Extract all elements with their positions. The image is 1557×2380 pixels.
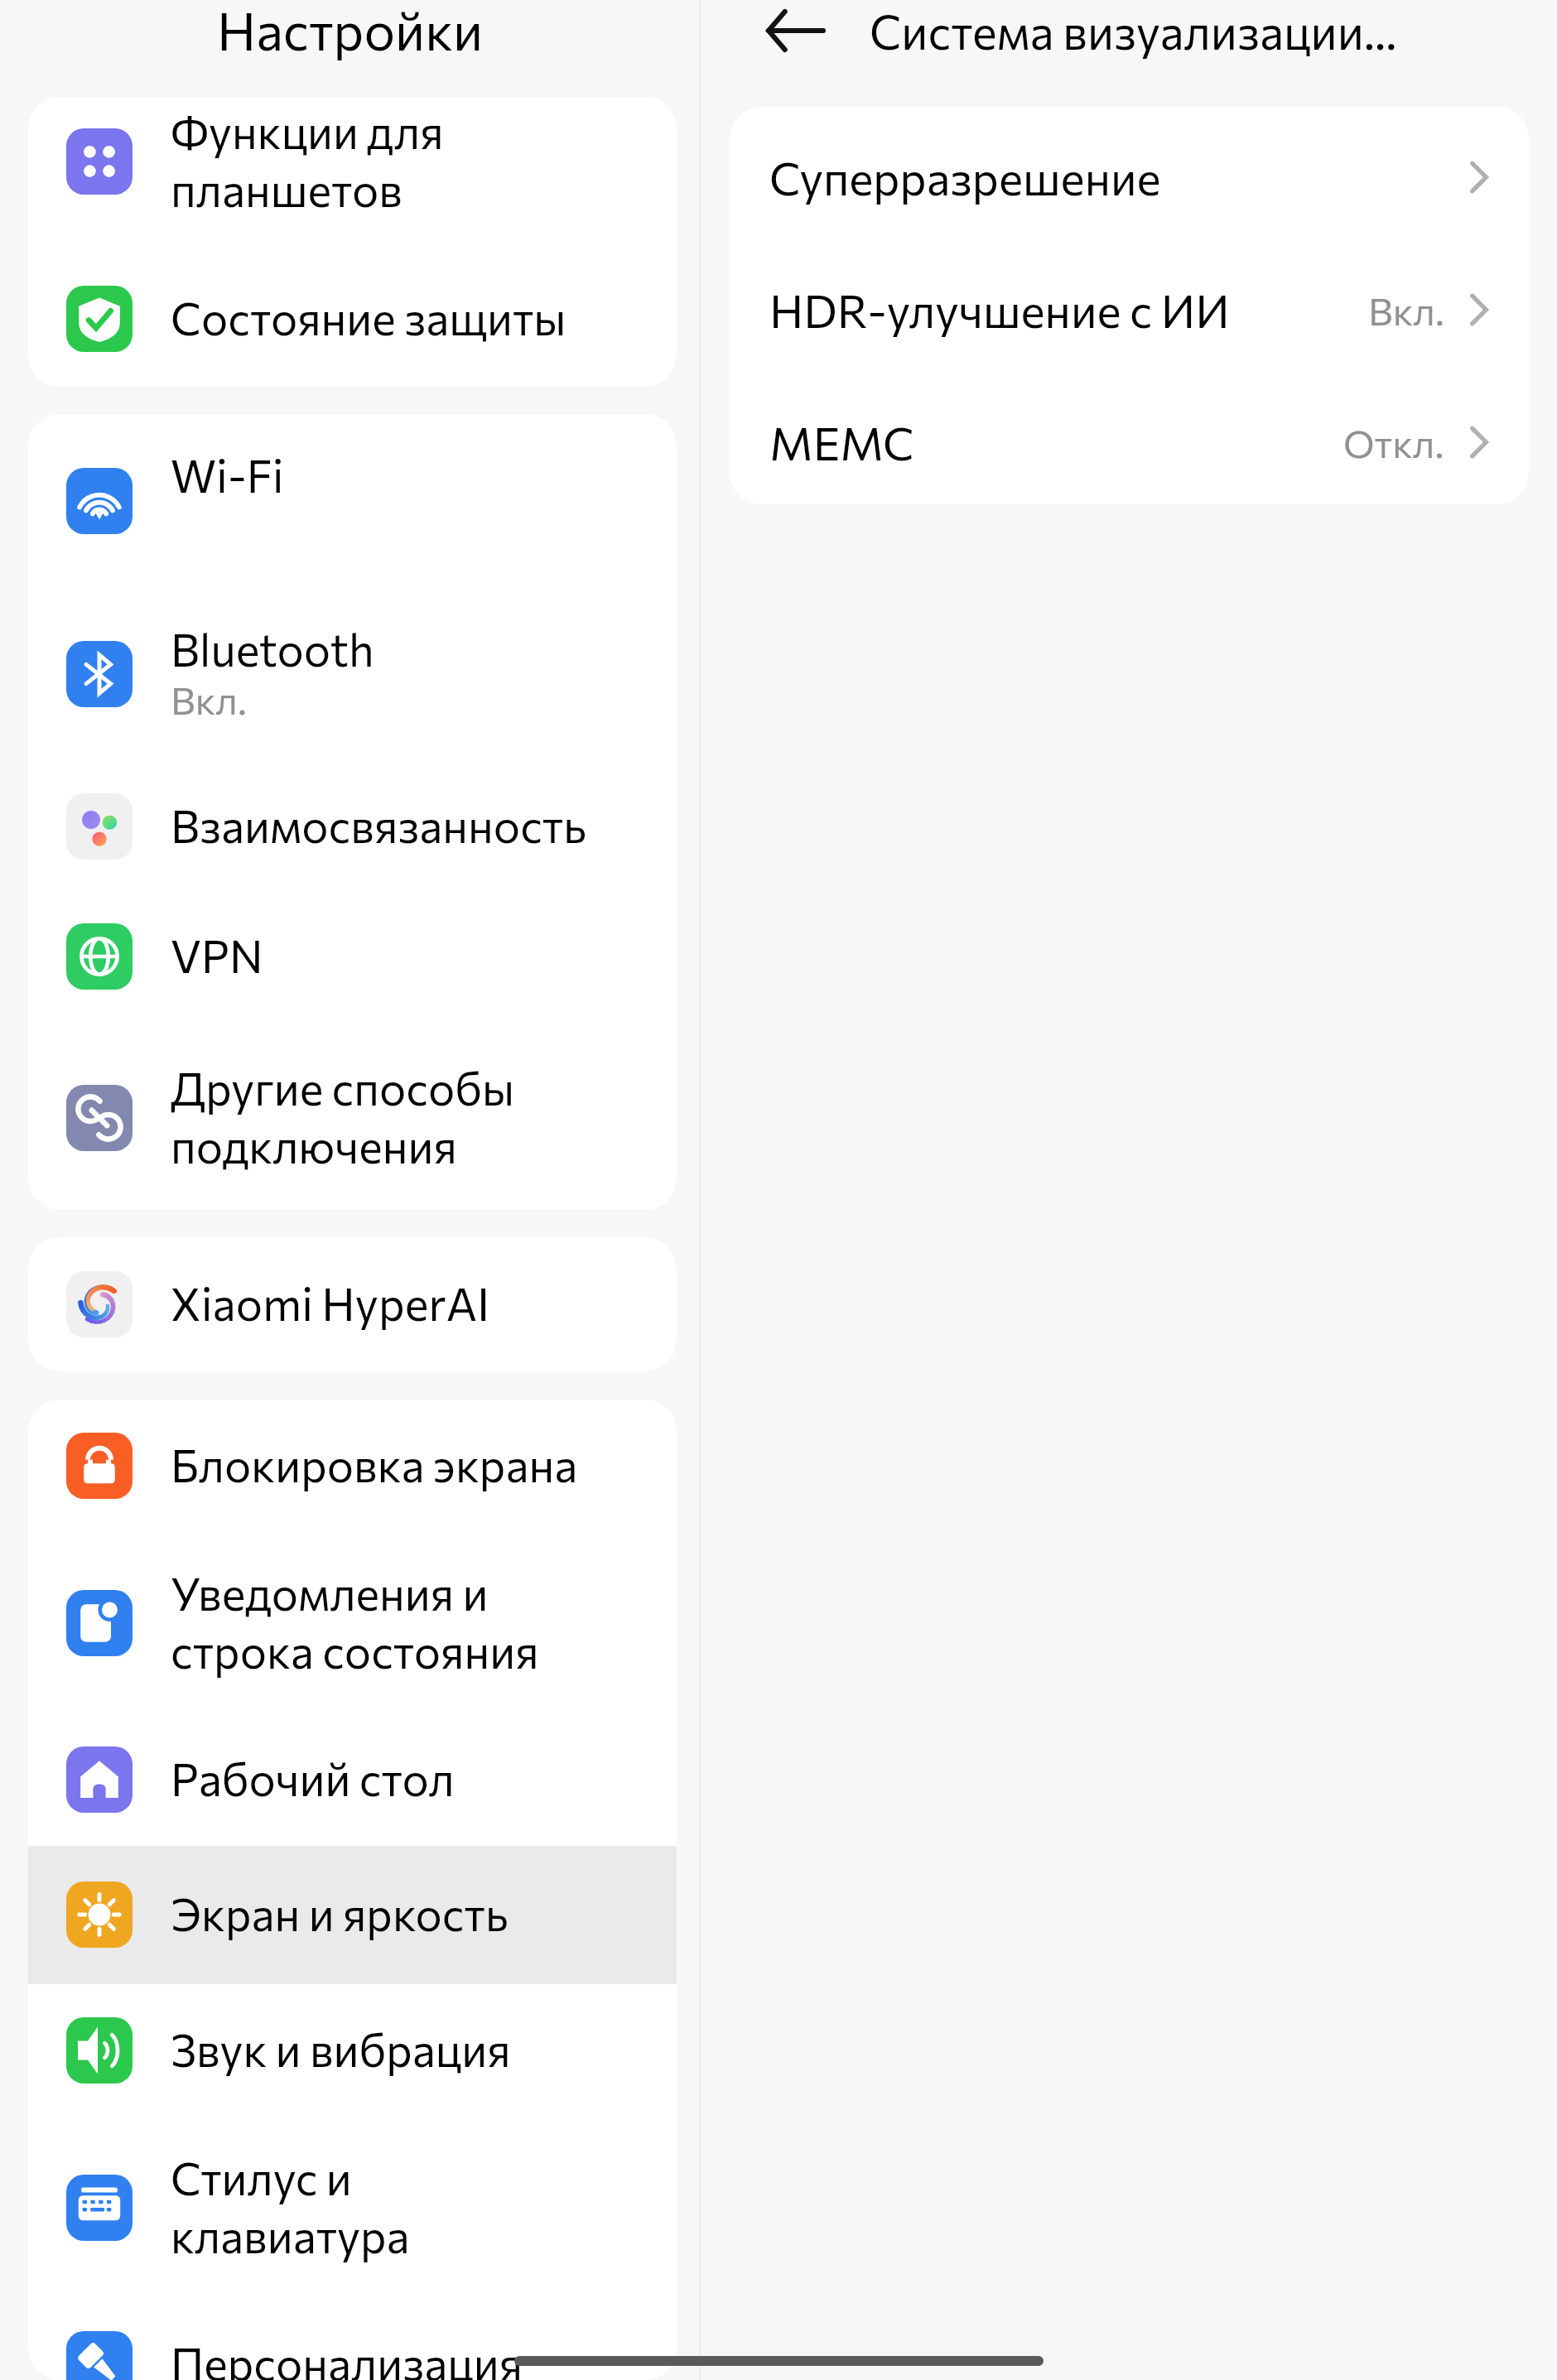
button[interactable]: HDR-улучшение с ИИ: [730, 239, 1529, 372]
button[interactable]: Back: [758, 0, 832, 68]
button[interactable]: Звук и вибрация: [28, 1984, 677, 2117]
staticText: Xiaomi HyperAI: [171, 1275, 490, 1330]
button[interactable]: Экран и яркость: [28, 1846, 677, 1984]
button[interactable]: Wi-Fi: [28, 414, 677, 588]
staticText: Bluetooth: [171, 621, 374, 676]
button[interactable]: Рабочий стол: [28, 1713, 677, 1846]
staticText: VPN: [171, 927, 263, 982]
button[interactable]: MEMC: [730, 372, 1529, 504]
staticText: HDR-улучшение с ИИ: [769, 282, 1230, 337]
staticText: Уведомления и строка состояния: [171, 1565, 539, 1678]
staticText: Функции для планшетов: [171, 104, 444, 216]
button[interactable]: Уведомления и строка состояния: [28, 1532, 677, 1713]
staticText: Wi-Fi: [171, 447, 284, 502]
staticText: Настройки: [0, 0, 700, 61]
staticText: Состояние защиты: [171, 290, 566, 344]
staticText: Рабочий стол: [171, 1751, 455, 1805]
staticText: Взаимосвязанность: [171, 797, 586, 852]
button[interactable]: Взаимосвязанность: [28, 760, 677, 893]
button[interactable]: Персонализация: [28, 2298, 677, 2380]
staticText: Экран и яркость: [171, 1886, 509, 1940]
button[interactable]: Bluetooth: [28, 588, 677, 760]
button[interactable]: Суперразрешение: [730, 107, 1529, 239]
staticText: Звук и вибрация: [171, 2021, 511, 2076]
staticText: Вкл.: [1368, 287, 1444, 333]
staticText: Стилус и клавиатура: [171, 2150, 410, 2262]
button[interactable]: Xiaomi HyperAI: [28, 1237, 677, 1371]
staticText: Персонализация: [171, 2335, 523, 2380]
staticText: Вкл.: [171, 676, 247, 722]
staticText: Откл.: [1343, 419, 1444, 465]
button[interactable]: Функции для планшетов: [28, 97, 677, 254]
button[interactable]: VPN: [28, 893, 677, 1025]
staticText: Система визуализации…: [870, 2, 1397, 59]
button[interactable]: Состояние защиты: [28, 254, 677, 387]
staticText: Блокировка экрана: [171, 1437, 578, 1491]
button[interactable]: Блокировка экрана: [28, 1400, 677, 1532]
button[interactable]: Стилус и клавиатура: [28, 2117, 677, 2298]
staticText: Суперразрешение: [769, 149, 1161, 205]
staticText: Другие способы подключения: [171, 1060, 515, 1173]
staticText: MEMC: [769, 414, 914, 470]
button[interactable]: Другие способы подключения: [28, 1025, 677, 1210]
